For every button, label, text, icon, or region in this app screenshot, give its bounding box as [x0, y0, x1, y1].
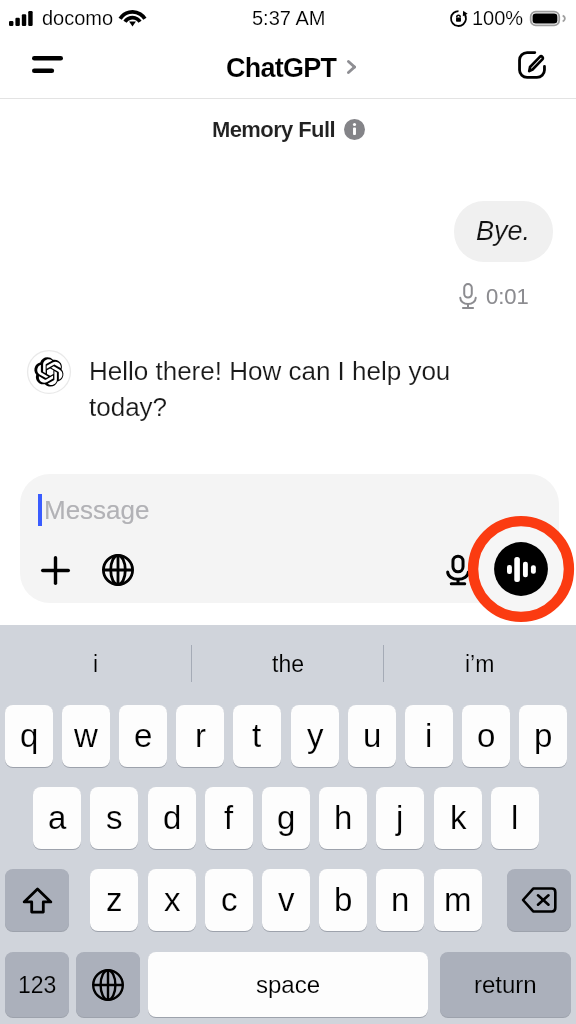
staticText: b — [334, 881, 353, 918]
staticText: w — [74, 717, 98, 754]
staticText: f — [224, 799, 234, 836]
button[interactable]: j — [376, 787, 424, 849]
button[interactable]: return — [440, 952, 571, 1017]
button[interactable]: Dictate — [435, 547, 481, 593]
button[interactable]: Search the web — [95, 547, 141, 593]
staticText: o — [477, 717, 496, 754]
button[interactable]: q — [5, 705, 53, 767]
staticText: Message — [44, 495, 150, 524]
staticText: m — [444, 881, 472, 918]
staticText: i — [425, 717, 433, 754]
button[interactable]: Voice mode — [468, 516, 574, 622]
button[interactable]: space — [148, 952, 428, 1017]
button[interactable]: z — [90, 869, 138, 931]
staticText: 100% — [472, 7, 524, 29]
staticText: s — [106, 799, 123, 836]
button[interactable]: k — [434, 787, 482, 849]
button[interactable]: w — [62, 705, 110, 767]
button[interactable]: y — [291, 705, 339, 767]
button[interactable]: b — [319, 869, 367, 931]
button[interactable]: h — [319, 787, 367, 849]
button[interactable]: p — [519, 705, 567, 767]
button[interactable]: Bye. — [454, 201, 553, 262]
staticText: i — [93, 651, 99, 677]
staticText: j — [396, 799, 404, 836]
staticText: Memory Full — [212, 117, 335, 142]
staticText: k — [450, 799, 467, 836]
button[interactable]: 123 — [5, 952, 69, 1017]
button[interactable]: Backspace — [507, 869, 571, 931]
staticText: return — [474, 971, 537, 998]
staticText: docomo — [42, 7, 114, 29]
button[interactable]: Menu — [14, 42, 70, 94]
button[interactable]: Change keyboard — [76, 952, 140, 1017]
staticText: ChatGPT — [226, 53, 337, 83]
button[interactable]: r — [176, 705, 224, 767]
staticText: e — [134, 717, 153, 754]
staticText: 5:37 AM — [252, 7, 326, 29]
staticText: u — [363, 717, 382, 754]
button[interactable]: x — [148, 869, 196, 931]
staticText: l — [511, 799, 519, 836]
staticText: g — [277, 799, 296, 836]
staticText: r — [195, 717, 206, 754]
staticText: Bye. — [476, 216, 531, 246]
button[interactable]: s — [90, 787, 138, 849]
staticText: p — [534, 717, 553, 754]
button[interactable]: Memory info — [344, 119, 365, 140]
button[interactable]: a — [33, 787, 81, 849]
button[interactable]: m — [434, 869, 482, 931]
button[interactable]: New chat — [507, 42, 559, 94]
staticText: the — [272, 651, 304, 677]
button[interactable]: n — [376, 869, 424, 931]
button[interactable]: i — [405, 705, 453, 767]
staticText: 123 — [18, 972, 57, 998]
staticText: d — [163, 799, 182, 836]
button[interactable]: t — [233, 705, 281, 767]
staticText: v — [278, 881, 295, 918]
button[interactable]: u — [348, 705, 396, 767]
button[interactable]: Add attachment — [32, 547, 78, 593]
staticText: 0:01 — [486, 284, 529, 309]
button[interactable]: the — [192, 625, 384, 701]
staticText: t — [252, 717, 262, 754]
staticText: h — [334, 799, 353, 836]
button[interactable]: g — [262, 787, 310, 849]
button[interactable]: Shift — [5, 869, 69, 931]
button[interactable]: f — [205, 787, 253, 849]
button[interactable]: ChatGPT — [226, 53, 356, 83]
staticText: space — [256, 971, 321, 998]
button[interactable]: e — [119, 705, 167, 767]
staticText: q — [20, 717, 39, 754]
button[interactable]: l — [491, 787, 539, 849]
button[interactable]: c — [205, 869, 253, 931]
button[interactable]: i’m — [384, 625, 576, 701]
staticText: i’m — [465, 651, 495, 677]
staticText: a — [48, 799, 67, 836]
button[interactable]: v — [262, 869, 310, 931]
button[interactable]: o — [462, 705, 510, 767]
staticText: Hello there! How can I help you today? — [89, 356, 461, 421]
staticText: c — [221, 881, 238, 918]
staticText: n — [391, 881, 410, 918]
button[interactable]: i — [0, 625, 192, 701]
button[interactable]: d — [148, 787, 196, 849]
staticText: x — [164, 881, 181, 918]
staticText: y — [307, 717, 324, 754]
staticText: z — [106, 881, 123, 918]
